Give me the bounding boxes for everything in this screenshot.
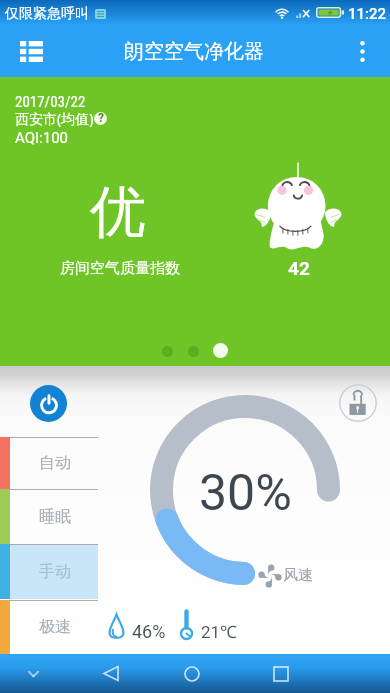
staticText: ?	[98, 112, 104, 124]
staticText: 朗空空气净化器	[124, 39, 264, 64]
button[interactable]: Home	[172, 654, 212, 693]
button[interactable]: Recent apps	[261, 654, 301, 693]
staticText: 30%	[199, 464, 292, 523]
staticText: 11:22	[348, 5, 387, 23]
staticText: 2017/03/22	[15, 93, 86, 111]
button[interactable]: Hide navigation bar	[13, 654, 53, 693]
staticText: 西安市(均值)	[15, 109, 94, 128]
staticText: 42	[288, 257, 310, 279]
button[interactable]: Menu	[9, 29, 53, 73]
staticText: 自动	[39, 453, 71, 473]
staticText: AQI:100	[15, 129, 69, 147]
staticText: 21℃	[201, 620, 238, 643]
button[interactable]: More options	[340, 29, 384, 73]
staticText: 46%	[132, 621, 166, 642]
staticText: 手动	[39, 562, 71, 582]
staticText: 睡眠	[39, 507, 71, 527]
button[interactable]: Lock	[339, 384, 377, 422]
button[interactable]: 极速	[0, 600, 390, 654]
button[interactable]: 手动	[0, 544, 390, 599]
button[interactable]: Back	[91, 654, 131, 693]
staticText: 优	[90, 177, 146, 248]
staticText: 极速	[39, 617, 71, 637]
button[interactable]: Power	[30, 385, 67, 422]
button[interactable]: Help	[94, 112, 107, 125]
button[interactable]: 自动	[0, 437, 390, 489]
staticText: 仅限紧急呼叫	[5, 5, 89, 23]
staticText: 房间空气质量指数	[60, 259, 180, 278]
staticText: 风速	[283, 566, 313, 585]
button[interactable]: 睡眠	[0, 489, 390, 545]
